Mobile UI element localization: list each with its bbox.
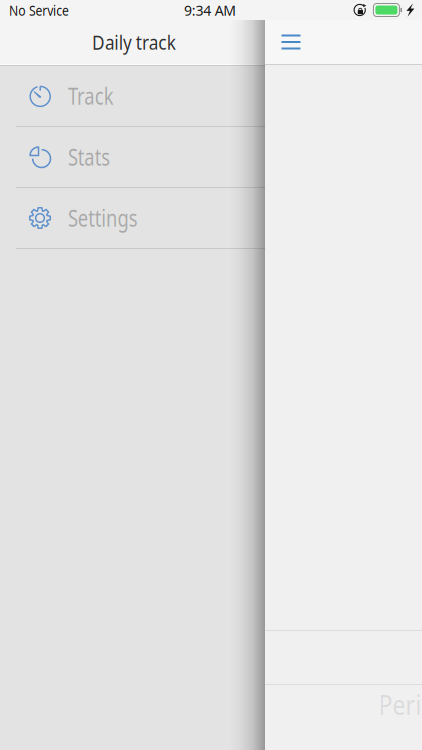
button[interactable]: Settings [0,188,265,249]
button[interactable]: Track [0,66,265,127]
staticText: 9:34 AM [184,0,238,20]
button[interactable]: Stats [0,127,265,188]
staticText: Period [378,685,422,723]
staticText: Track [68,81,124,111]
staticText: Settings [68,203,154,233]
button[interactable]: Menu [269,20,313,64]
staticText: Stats [68,142,120,172]
staticText: No Service [9,0,81,20]
staticText: Daily track [92,28,190,56]
